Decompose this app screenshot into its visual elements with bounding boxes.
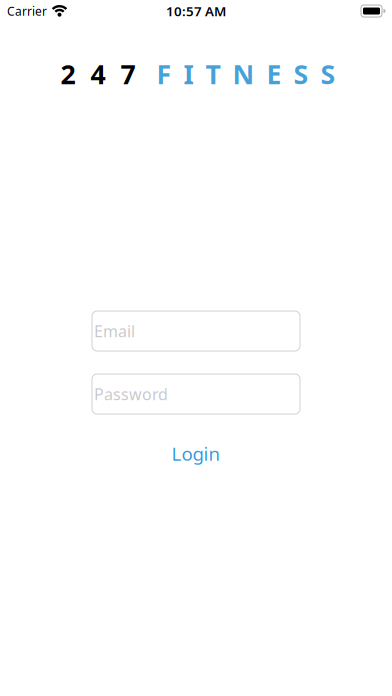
staticText: 10:57 AM: [166, 2, 226, 20]
staticText: FITNESS: [156, 56, 335, 92]
textField[interactable]: Email: [96, 317, 300, 345]
button[interactable]: Login: [171, 441, 220, 466]
staticText: Carrier: [7, 3, 47, 19]
staticText: Login: [171, 441, 220, 466]
staticText: 247: [60, 56, 135, 92]
staticText: Email: [94, 320, 135, 342]
staticText: Password: [94, 383, 168, 405]
staticText: Email: [96, 317, 152, 345]
staticText: Password: [96, 380, 192, 408]
secureTextField[interactable]: Password: [96, 380, 300, 408]
